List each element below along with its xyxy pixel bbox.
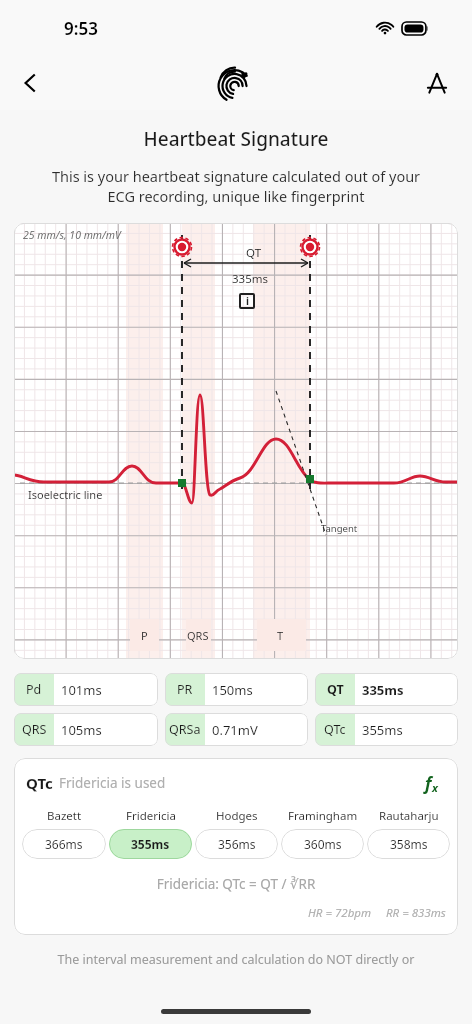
staticText: 25 mm/s, 10 mm/mV: [23, 228, 121, 242]
button[interactable]: 358ms: [367, 829, 450, 859]
staticText: 366ms: [45, 836, 83, 852]
staticText: 101ms: [61, 681, 102, 699]
button[interactable]: 360ms: [281, 829, 364, 859]
staticText: 9:53: [64, 17, 98, 40]
staticText: QT: [327, 681, 344, 698]
staticText: Fridericia: [126, 808, 176, 824]
staticText: 335ms: [362, 681, 404, 699]
staticText: Fridericia: QTc = QT / ∛RR: [22, 875, 450, 893]
button[interactable]: QRSa: [165, 713, 308, 746]
button[interactable]: Heartbeat signature: [212, 59, 260, 107]
staticText: HR = 72bpm: [308, 905, 372, 921]
staticText: T: [277, 628, 284, 643]
staticText: P: [141, 628, 148, 643]
staticText: 150ms: [212, 681, 253, 699]
staticText: x: [432, 780, 438, 795]
button[interactable]: PR: [165, 673, 308, 706]
button[interactable]: 356ms: [195, 829, 278, 859]
staticText: QRS: [187, 628, 209, 643]
button[interactable]: Pd: [14, 673, 158, 706]
staticText: This is your heartbeat signature calcula…: [24, 166, 448, 207]
staticText: 335ms: [232, 271, 268, 287]
staticText: Heartbeat Signature: [0, 126, 472, 152]
staticText: Isoelectric line: [28, 487, 103, 502]
button[interactable]: Back: [8, 61, 52, 105]
staticText: QT: [246, 245, 262, 261]
staticText: Rautaharju: [379, 808, 439, 824]
staticText: 358ms: [390, 836, 428, 852]
staticText: 356ms: [218, 836, 256, 852]
button[interactable]: 355ms: [109, 829, 192, 859]
staticText: 360ms: [304, 836, 342, 852]
button[interactable]: QRS: [14, 713, 158, 746]
staticText: QRSa: [169, 721, 201, 738]
staticText: Hodges: [216, 808, 258, 824]
staticText: Pd: [26, 681, 42, 698]
staticText: 105ms: [61, 721, 102, 739]
button[interactable]: QT: [315, 673, 458, 706]
button[interactable]: QTc: [315, 713, 458, 746]
staticText: PR: [177, 681, 193, 698]
button[interactable]: Info: [239, 293, 255, 309]
button[interactable]: Formula: [416, 768, 446, 798]
staticText: QRS: [22, 721, 47, 738]
staticText: 0.71mV: [212, 721, 258, 739]
staticText: 355ms: [131, 836, 170, 852]
button[interactable]: 366ms: [22, 829, 106, 859]
staticText: RR = 833ms: [386, 905, 446, 921]
staticText: Fridericia is used: [59, 774, 166, 792]
staticText: Tangent: [321, 522, 358, 535]
button[interactable]: Caliper: [416, 62, 458, 104]
staticText: 355ms: [362, 721, 403, 739]
staticText: Framingham: [288, 808, 358, 824]
staticText: Bazett: [47, 808, 82, 824]
staticText: i: [246, 294, 249, 308]
staticText: The interval measurement and calculation…: [16, 951, 456, 968]
staticText: f: [425, 772, 432, 795]
staticText: QTc: [26, 773, 53, 793]
staticText: QTc: [324, 721, 346, 738]
